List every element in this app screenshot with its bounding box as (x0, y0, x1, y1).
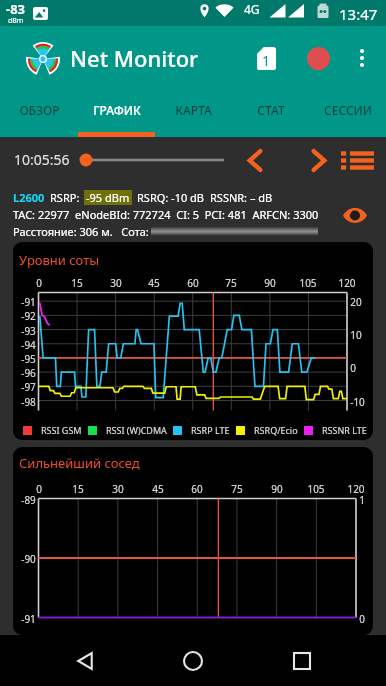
staticText: RSRP: (50, 190, 80, 205)
staticText: -98 (21, 395, 36, 409)
staticText: СТАТ (257, 102, 285, 118)
button[interactable]: СЕССИИ (309, 90, 386, 137)
staticText: 0 (36, 276, 42, 290)
button[interactable]: Record (300, 40, 336, 76)
staticText: 10 (350, 328, 362, 342)
staticText: -83 (6, 0, 26, 18)
staticText: КАРТА (175, 102, 212, 118)
staticText: 90 (264, 276, 276, 290)
staticText: 0 (36, 482, 42, 496)
staticText: RSRQ/Ecio (254, 424, 298, 436)
staticText: 13:47 (339, 4, 378, 24)
staticText: -91 (21, 612, 36, 626)
staticText: 4G (244, 1, 260, 17)
button[interactable]: Toggle visibility (340, 200, 370, 230)
staticText: 75 (225, 276, 237, 290)
staticText: L2600 (13, 190, 45, 205)
staticText: Сильнейший сосед (19, 454, 140, 472)
staticText: 90 (271, 482, 283, 496)
staticText: RSSNR LTE (322, 424, 367, 436)
staticText: 120 (347, 482, 365, 496)
staticText: -94 (21, 338, 36, 352)
staticText: 45 (148, 276, 160, 290)
staticText: 75 (231, 482, 243, 496)
staticText: dBm (8, 16, 24, 24)
staticText: RSRP LTE (191, 424, 230, 436)
staticText: 60 (187, 276, 199, 290)
staticText: -95 dBm (86, 190, 130, 205)
button[interactable]: Timeline (79, 147, 224, 173)
staticText: 30 (110, 276, 122, 290)
button[interactable]: Recents (278, 637, 326, 685)
staticText: Уровни соты (19, 251, 100, 269)
staticText: -91 (21, 295, 36, 309)
staticText: -10 (350, 395, 365, 409)
button[interactable]: Back (61, 637, 109, 685)
staticText: Net Monitor (70, 43, 199, 73)
button[interactable]: ГРАФИК (78, 90, 155, 137)
staticText: 60 (191, 482, 203, 496)
staticText: -95 (21, 352, 36, 366)
staticText: 15 (71, 276, 83, 290)
staticText: 0 (359, 612, 365, 626)
button[interactable]: SIM 1 (248, 40, 284, 76)
staticText: -90 (21, 552, 36, 566)
staticText: -96 (21, 366, 36, 380)
staticText: RSRQ: -10 dB (137, 190, 205, 205)
button[interactable]: КАРТА (155, 90, 232, 137)
staticText: -92 (21, 309, 36, 323)
staticText: 120 (338, 276, 356, 290)
staticText: 105 (299, 276, 317, 290)
staticText: -97 (21, 380, 36, 394)
staticText: RSSI (W)CDMA (106, 424, 167, 436)
staticText: TAC: 22977 eNodeBId: 772724 CI: 5 PCI: 4… (13, 207, 319, 222)
staticText: RSSNR: – dB (210, 190, 273, 205)
staticText: ОБЗОР (19, 102, 60, 118)
staticText: СЕССИИ (324, 102, 372, 118)
button[interactable]: Home (169, 637, 217, 685)
staticText: 1 (262, 51, 271, 70)
staticText: -93 (21, 324, 36, 338)
staticText: 0 (350, 361, 356, 375)
staticText: ГРАФИК (93, 102, 141, 118)
staticText: 45 (152, 482, 164, 496)
staticText: Расстояние: 306 м. Сота: (13, 224, 149, 239)
button[interactable]: Previous (237, 142, 273, 178)
staticText: 105 (307, 482, 325, 496)
staticText: 15 (72, 482, 84, 496)
button[interactable]: More options (345, 41, 379, 75)
staticText: 20 (350, 295, 362, 309)
button[interactable]: List (339, 142, 375, 178)
button[interactable]: Next (301, 142, 337, 178)
staticText: RSSI GSM (41, 424, 82, 436)
button[interactable]: ОБЗОР (0, 90, 78, 137)
staticText: -89 (21, 493, 36, 507)
staticText: 1 (359, 493, 365, 507)
staticText: 30 (112, 482, 124, 496)
button[interactable]: СТАТ (232, 90, 309, 137)
staticText: 10:05:56 (14, 150, 70, 169)
